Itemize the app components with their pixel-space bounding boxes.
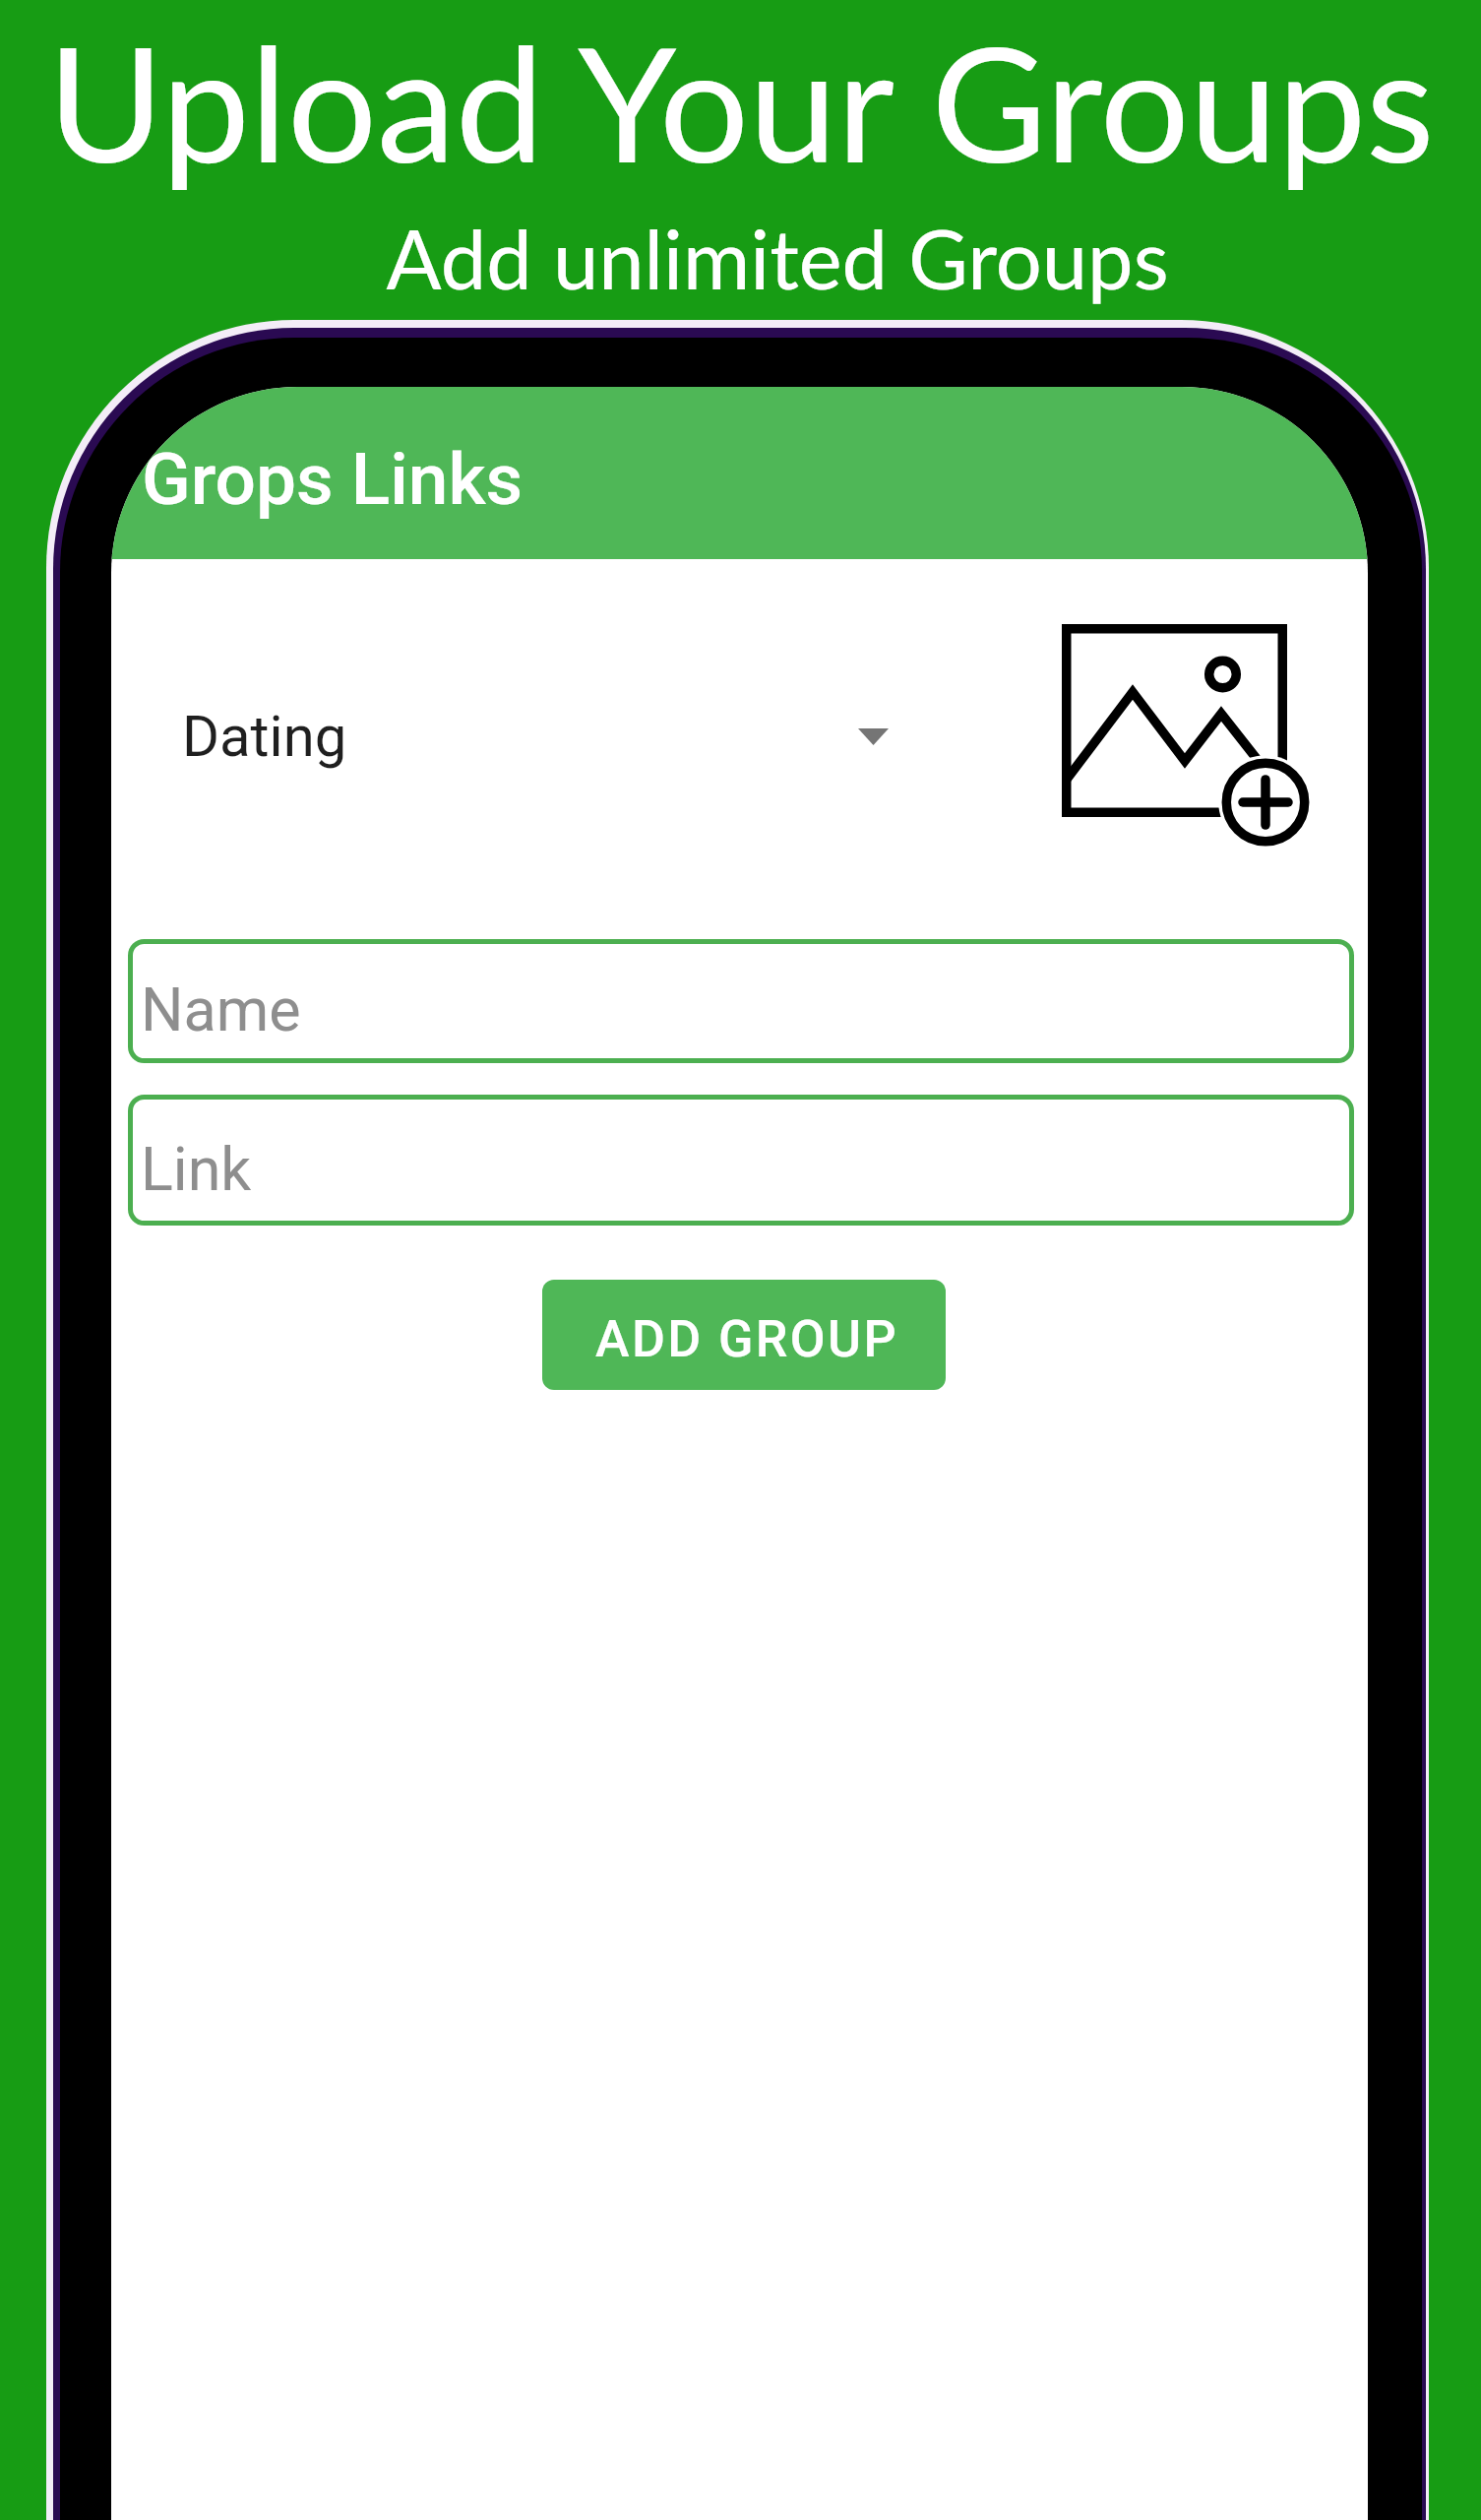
staticText: Add unlimited Groups	[386, 209, 1169, 307]
staticText: Grops Links	[142, 437, 524, 522]
button[interactable]: Dating	[182, 667, 889, 805]
staticText: ADD GROUP	[595, 1309, 899, 1369]
staticText: Upload Your Groups	[47, 7, 1435, 197]
button[interactable]: ADD GROUP	[542, 1280, 946, 1390]
staticText: Link	[141, 1134, 252, 1204]
staticText: Dating	[182, 703, 347, 770]
staticText: Name	[141, 975, 301, 1044]
button[interactable]: Link	[128, 1095, 1354, 1226]
button[interactable]: Name	[128, 939, 1354, 1063]
button[interactable]: Add image	[1057, 618, 1342, 854]
